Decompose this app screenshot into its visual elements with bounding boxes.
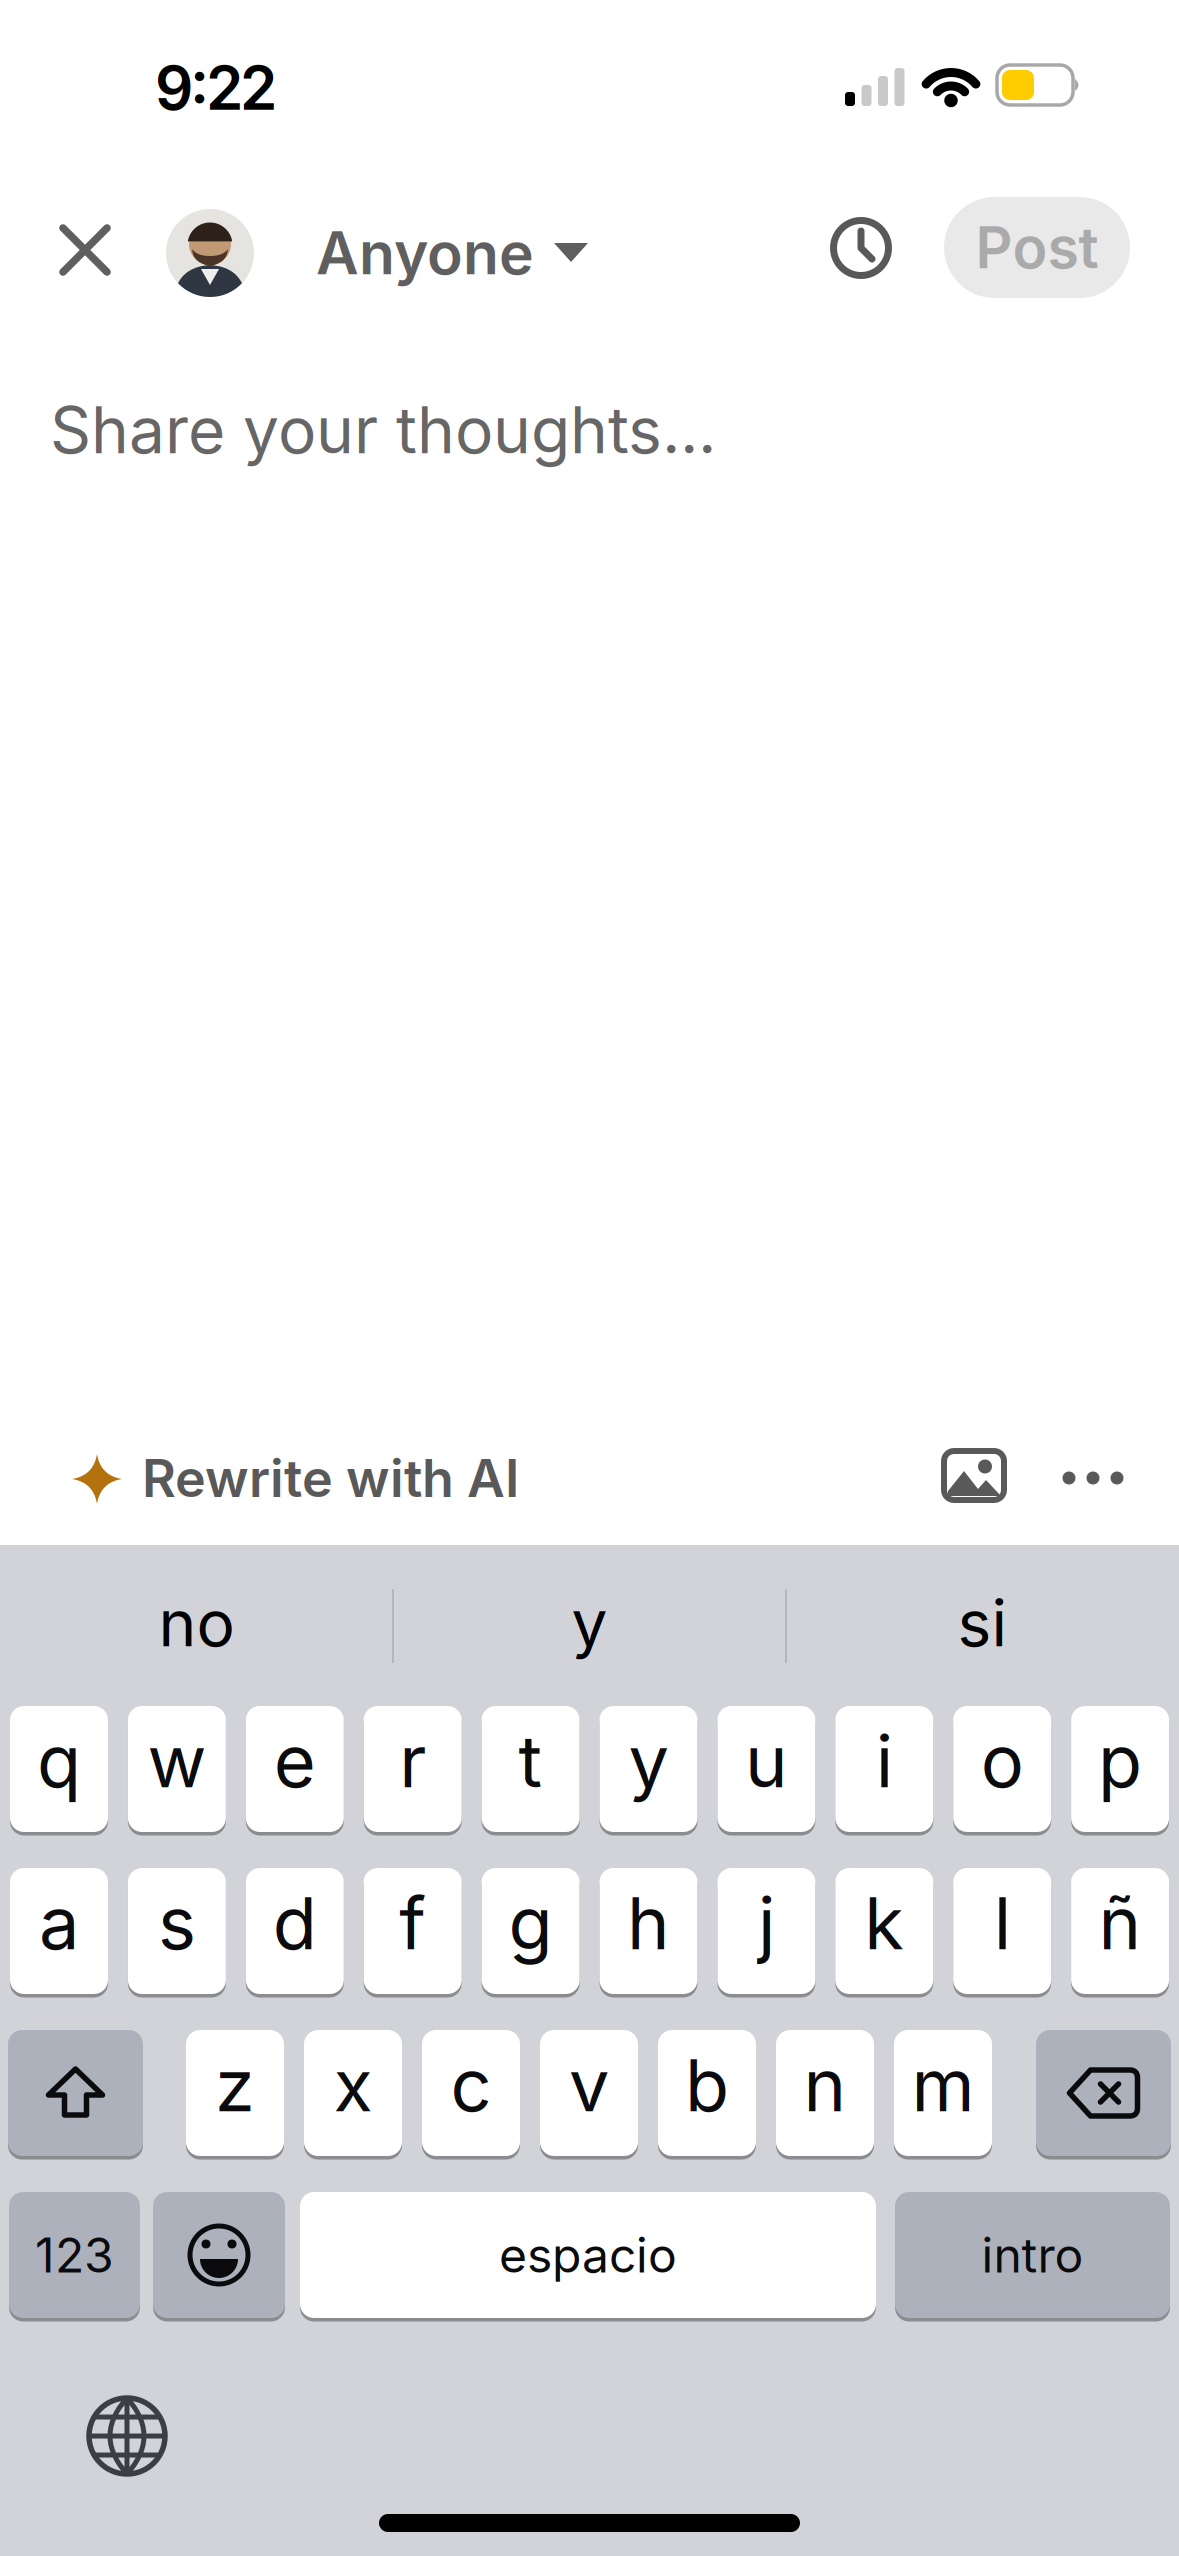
button[interactable]: Post [944,197,1130,298]
staticText: a [39,1880,79,1965]
button[interactable]: e [246,1706,344,1832]
staticText: no [158,1585,234,1661]
staticText: u [745,1718,788,1803]
button[interactable]: w [128,1706,226,1832]
staticText: Rewrite with AI [142,1447,519,1509]
staticText: Share your thoughts... [50,392,716,468]
button[interactable]: r [364,1706,462,1832]
button[interactable]: n [776,2030,874,2156]
staticText: z [215,2042,255,2127]
button[interactable]: c [422,2030,520,2156]
staticText: q [37,1718,81,1803]
button[interactable]: g [482,1868,580,1994]
button[interactable]: x [304,2030,402,2156]
staticText: 9:22 [155,53,277,123]
button[interactable]: 123 [9,2192,140,2318]
button[interactable]: p [1071,1706,1169,1832]
staticText: v [569,2042,609,2127]
button[interactable]: k [835,1868,933,1994]
button[interactable]: z [186,2030,284,2156]
button[interactable]: Anyone [166,209,826,297]
staticText: espacio [499,2227,677,2283]
button[interactable]: v [540,2030,638,2156]
staticText: 123 [35,2227,114,2283]
staticText: d [273,1880,317,1965]
button[interactable]: f [364,1868,462,1994]
staticText: h [627,1880,670,1965]
button[interactable]: Share your thoughts... [50,392,1050,468]
button[interactable]: q [10,1706,108,1832]
button[interactable]: y [393,1574,786,1672]
staticText: k [864,1880,904,1965]
button[interactable]: t [482,1706,580,1832]
button[interactable]: i [835,1706,933,1832]
button[interactable]: l [953,1868,1051,1994]
button[interactable]: Rewrite with AI [72,1447,772,1509]
staticText: Post [975,214,1098,281]
staticText: x [333,2042,372,2127]
button[interactable]: a [10,1868,108,1994]
staticText: b [685,2042,729,2127]
staticText: y [628,1718,668,1803]
staticText: si [957,1585,1007,1661]
staticText: o [981,1718,1024,1803]
staticText: c [450,2042,491,2127]
button[interactable] [59,224,111,276]
staticText: f [399,1880,426,1965]
staticText: p [1098,1718,1142,1803]
button[interactable]: espacio [300,2192,876,2318]
staticText: w [147,1718,206,1803]
button[interactable]: j [717,1868,815,1994]
staticText: intro [981,2227,1083,2283]
button[interactable] [1062,1471,1123,1484]
staticText: e [274,1718,316,1803]
staticText: Anyone [316,218,534,288]
staticText: n [803,2042,846,2127]
button[interactable] [153,2192,285,2318]
staticText: j [758,1880,775,1965]
staticText: r [399,1718,426,1803]
staticText: t [519,1718,543,1803]
button[interactable]: h [599,1868,697,1994]
button[interactable] [86,2395,168,2477]
staticText: g [509,1880,553,1965]
button[interactable] [830,217,892,279]
button[interactable]: ñ [1071,1868,1169,1994]
staticText: i [876,1718,893,1803]
button[interactable]: si [786,1574,1179,1672]
staticText: l [994,1880,1011,1965]
button[interactable]: d [246,1868,344,1994]
staticText: ñ [1099,1880,1142,1965]
button[interactable]: o [953,1706,1051,1832]
button[interactable]: y [599,1706,697,1832]
staticText: s [158,1880,196,1965]
button[interactable] [944,1451,1004,1500]
button[interactable]: u [717,1706,815,1832]
button[interactable]: no [0,1574,393,1672]
button[interactable]: intro [895,2192,1170,2318]
button[interactable]: b [658,2030,756,2156]
staticText: m [911,2042,974,2127]
button[interactable] [1036,2030,1171,2156]
button[interactable]: s [128,1868,226,1994]
button[interactable]: m [894,2030,992,2156]
staticText: y [571,1585,607,1661]
button[interactable] [8,2030,143,2156]
